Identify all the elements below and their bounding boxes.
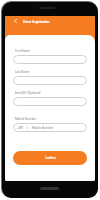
button[interactable]: Back [12, 18, 18, 24]
button[interactable] [13, 76, 87, 85]
button[interactable]: Confirm [13, 151, 87, 165]
staticText: Driver Registration [23, 20, 50, 24]
staticText: Last Name [15, 70, 30, 74]
staticText: First Name [15, 49, 30, 53]
button[interactable] [13, 55, 87, 64]
staticText: Confirm [45, 156, 56, 160]
staticText: Email ID (Optional) [15, 91, 41, 95]
staticText: Mobile Number [15, 117, 37, 121]
staticText: Mobile Number [32, 126, 54, 130]
staticText: +971 [17, 126, 24, 130]
button[interactable] [13, 97, 87, 106]
button[interactable]: +971 [13, 123, 87, 132]
